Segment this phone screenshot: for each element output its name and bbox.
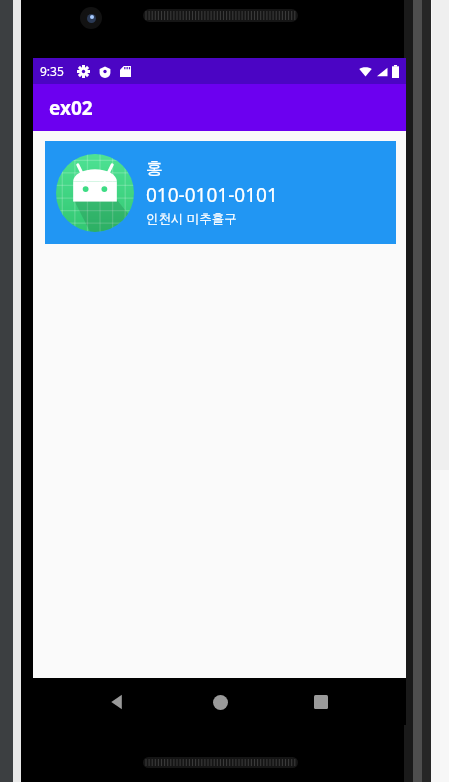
button[interactable]: ex02 [33,84,406,131]
staticText: 인천시 미추홀구 [146,210,237,227]
staticText: 9:35 [40,63,64,79]
staticText: 010-0101-0101 [146,182,278,208]
staticText: 홍 [146,158,163,179]
button[interactable]: Recent apps [301,682,341,722]
staticText: ex02 [49,95,93,121]
button[interactable]: Back [98,682,138,722]
button[interactable]: 홍 [45,141,396,244]
button[interactable]: Home [200,682,240,722]
